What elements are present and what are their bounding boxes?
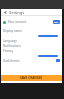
button[interactable]: Back <box>3 10 7 14</box>
button[interactable]: Display name <box>1 28 62 33</box>
staticText: Display name <box>3 29 23 33</box>
staticText: Settings <box>9 10 25 15</box>
staticText: EDIT <box>54 21 59 24</box>
staticText: Notifications <box>3 44 21 48</box>
button[interactable]: EDIT <box>53 20 60 24</box>
staticText: Privacy <box>3 49 14 53</box>
button[interactable]: Notifications <box>1 43 62 48</box>
button[interactable]: Dark theme <box>1 58 62 63</box>
staticText: SAVE CHANGES <box>20 76 43 80</box>
button[interactable]: Language <box>1 38 62 43</box>
staticText: Dark theme <box>3 59 20 63</box>
staticText: Your account <box>8 20 27 24</box>
button[interactable]: SAVE CHANGES <box>1 75 62 81</box>
button[interactable]: Your account <box>1 18 62 26</box>
staticText: Language <box>3 39 18 43</box>
button[interactable]: Privacy <box>1 48 62 53</box>
